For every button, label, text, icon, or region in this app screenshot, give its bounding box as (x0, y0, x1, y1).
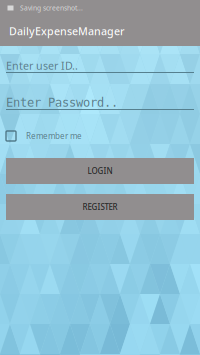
button[interactable]: Remember me (6, 130, 194, 142)
staticText: Enter Password.. (6, 96, 118, 109)
staticText: Enter user ID.. (6, 58, 78, 73)
staticText: LOGIN (87, 166, 112, 176)
staticText: Saving screenshot... (20, 4, 83, 12)
button[interactable]: LOGIN (6, 158, 194, 184)
staticText: DailyExpenseManager (9, 24, 125, 38)
staticText: Remember me (26, 131, 82, 141)
button[interactable]: REGISTER (6, 194, 194, 220)
staticText: REGISTER (82, 202, 117, 212)
